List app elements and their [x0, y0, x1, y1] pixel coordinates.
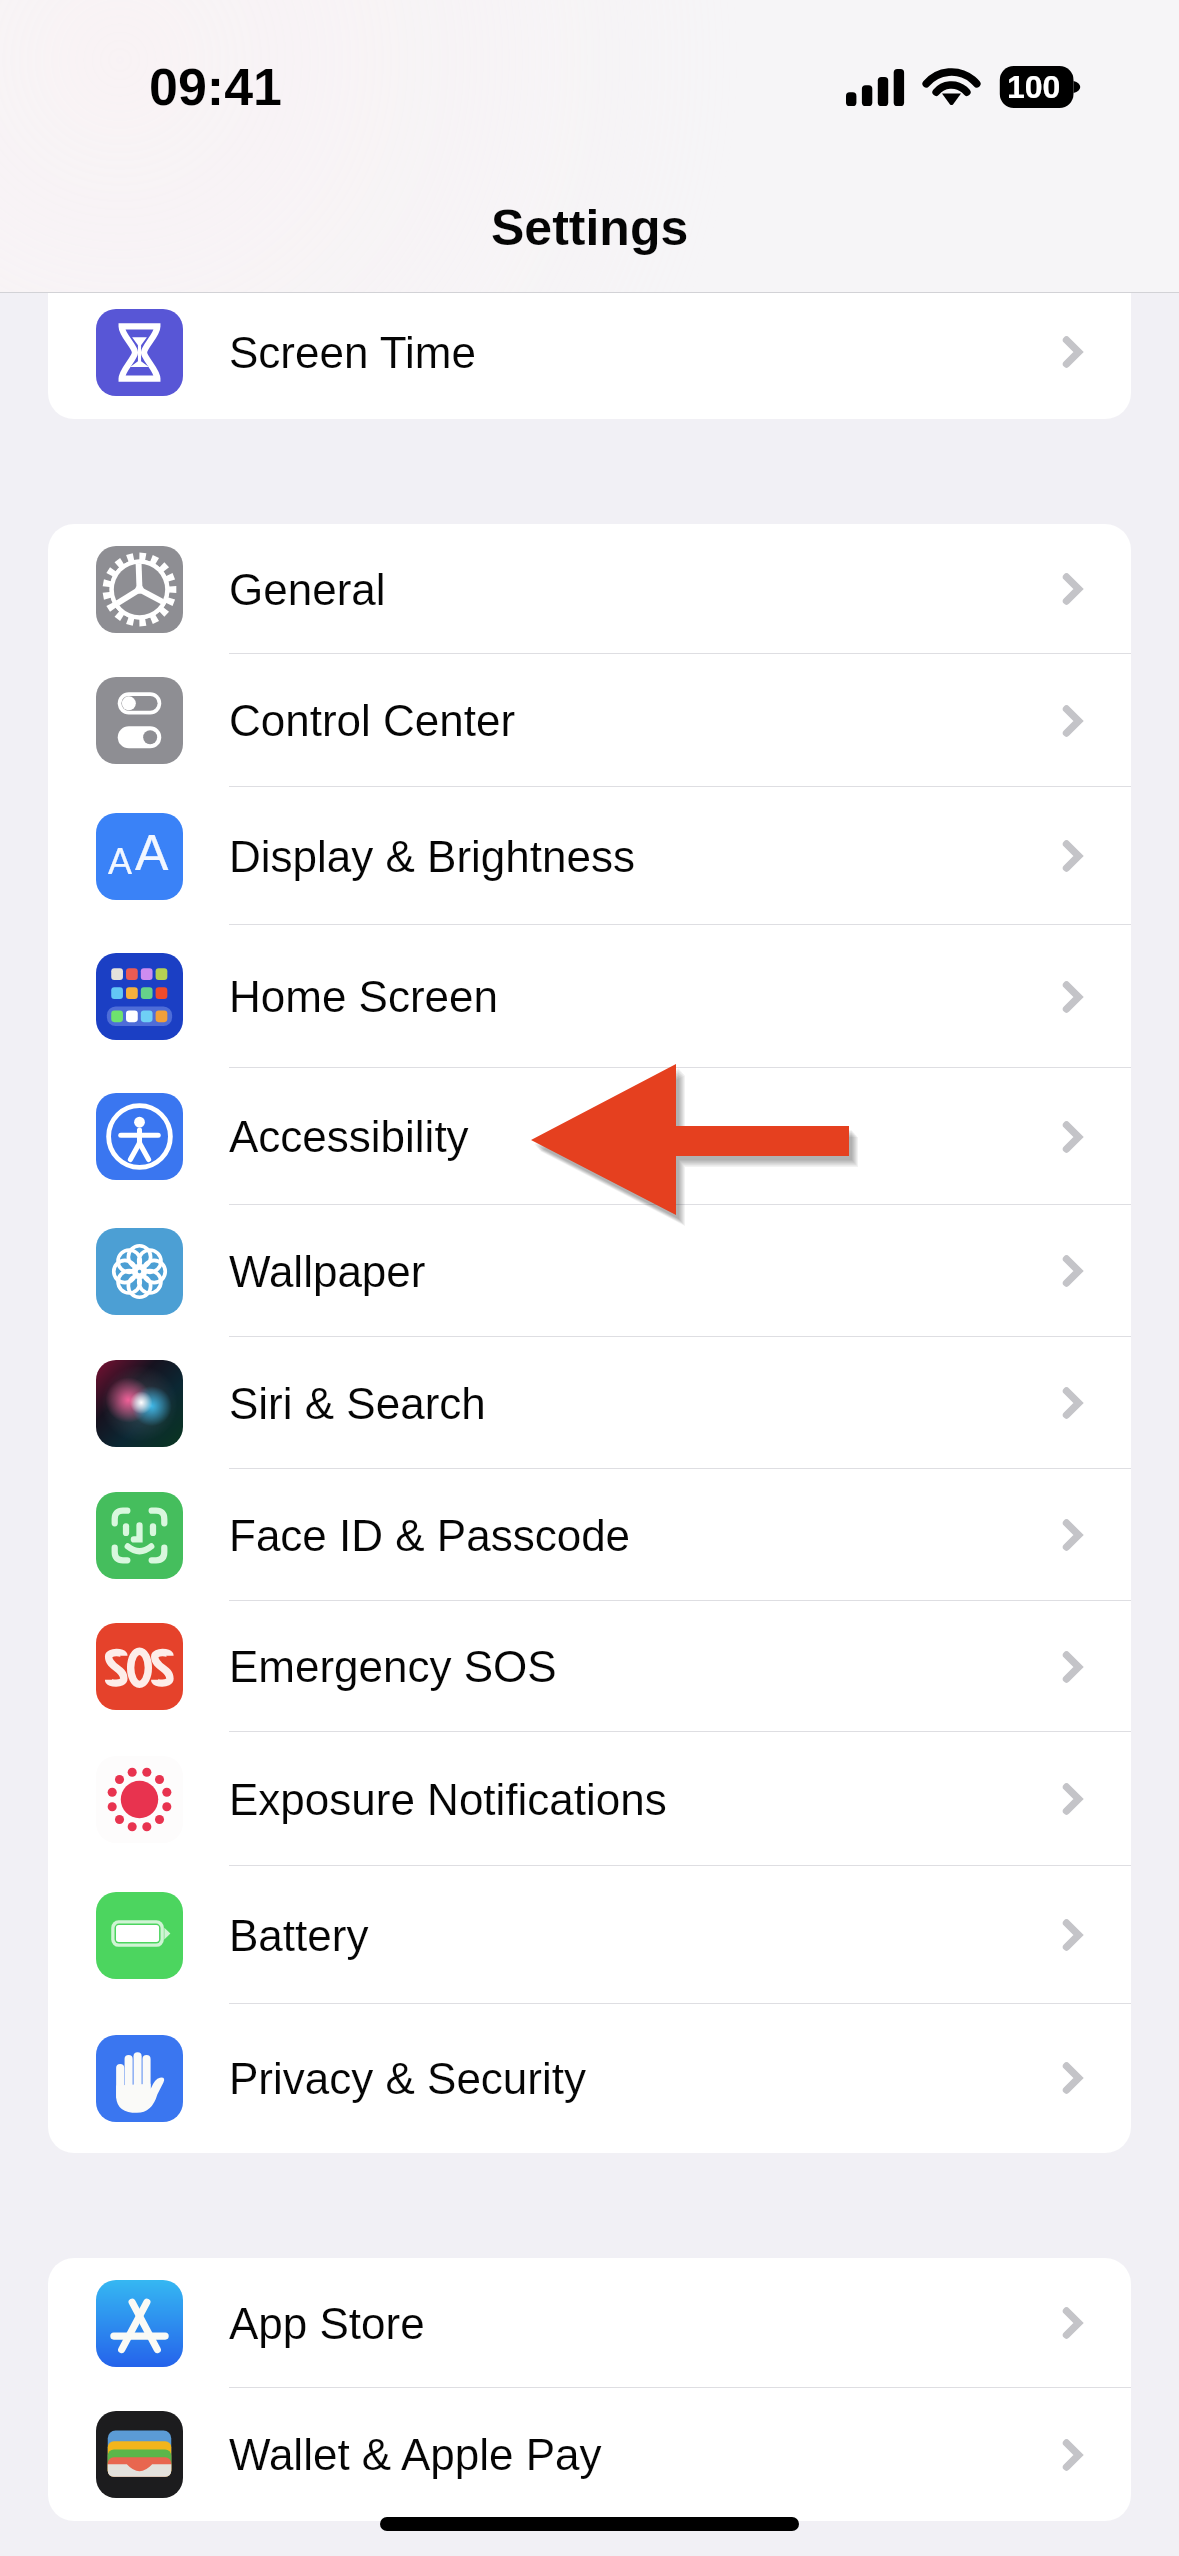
staticText: A: [108, 841, 133, 881]
staticText: General: [229, 565, 386, 614]
button[interactable]: General: [48, 524, 1131, 654]
staticText: Wallet & Apple Pay: [229, 2430, 602, 2479]
staticText: Emergency SOS: [229, 1642, 557, 1691]
button[interactable]: Face ID & Passcode: [48, 1469, 1131, 1601]
button[interactable]: Screen Time: [48, 285, 1131, 419]
staticText: A: [135, 825, 169, 881]
staticText: Accessibility: [229, 1112, 469, 1161]
staticText: Privacy & Security: [229, 2054, 586, 2103]
button[interactable]: Home Screen: [48, 925, 1131, 1068]
staticText: Face ID & Passcode: [229, 1511, 631, 1560]
button[interactable]: Wallpaper: [48, 1205, 1131, 1337]
staticText: Battery: [229, 1911, 369, 1960]
staticText: Settings: [491, 200, 689, 256]
staticText: 09:41: [149, 58, 282, 116]
staticText: Screen Time: [229, 328, 476, 377]
staticText: Control Center: [229, 696, 516, 745]
staticText: Display & Brightness: [229, 832, 635, 881]
staticText: App Store: [229, 2299, 425, 2348]
staticText: Exposure Notifications: [229, 1775, 667, 1824]
button[interactable]: Emergency SOS: [48, 1601, 1131, 1732]
staticText: Wallpaper: [229, 1247, 426, 1296]
staticText: Siri & Search: [229, 1379, 486, 1428]
button[interactable]: App Store: [48, 2258, 1131, 2388]
button[interactable]: Accessibility: [48, 1068, 1131, 1205]
staticText: Home Screen: [229, 972, 499, 1021]
button[interactable]: Battery: [48, 1866, 1131, 2004]
button[interactable]: Control Center: [48, 654, 1131, 787]
button[interactable]: Siri & Search: [48, 1337, 1131, 1469]
button[interactable]: Display & Brightness: [48, 787, 1131, 925]
button[interactable]: Exposure Notifications: [48, 1732, 1131, 1866]
button[interactable]: Wallet & Apple Pay: [48, 2388, 1131, 2521]
button[interactable]: Privacy & Security: [48, 2004, 1131, 2152]
staticText: 100: [1007, 69, 1061, 105]
